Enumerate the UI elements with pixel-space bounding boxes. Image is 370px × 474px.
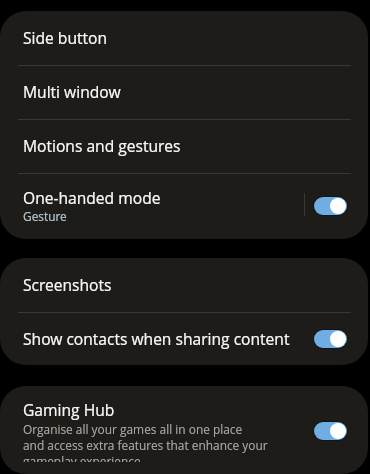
staticText: Side button xyxy=(23,27,107,48)
staticText: Gaming Hub xyxy=(23,399,115,420)
button[interactable]: One-handed mode xyxy=(305,197,368,217)
button[interactable]: Screenshots xyxy=(0,258,368,312)
staticText: Show contacts when sharing content xyxy=(23,328,313,349)
staticText: Organise all your games all in one place… xyxy=(23,421,268,462)
staticText: Motions and gestures xyxy=(23,135,181,156)
staticText: Screenshots xyxy=(23,274,112,295)
button[interactable]: Motions and gestures xyxy=(0,120,368,173)
button[interactable]: Show contacts when sharing content xyxy=(313,329,348,349)
button[interactable]: Side button xyxy=(0,11,368,65)
staticText: One-handed mode xyxy=(23,187,161,208)
button[interactable]: Gaming Hub xyxy=(0,386,368,474)
staticText: Gesture xyxy=(23,208,67,224)
staticText: Multi window xyxy=(23,81,121,102)
button[interactable]: One-handed mode xyxy=(313,196,348,216)
button[interactable]: Gaming Hub xyxy=(313,421,348,441)
button[interactable]: One-handed mode xyxy=(0,188,304,225)
button[interactable]: Show contacts when sharing content xyxy=(0,313,368,365)
button[interactable]: Multi window xyxy=(0,66,368,119)
